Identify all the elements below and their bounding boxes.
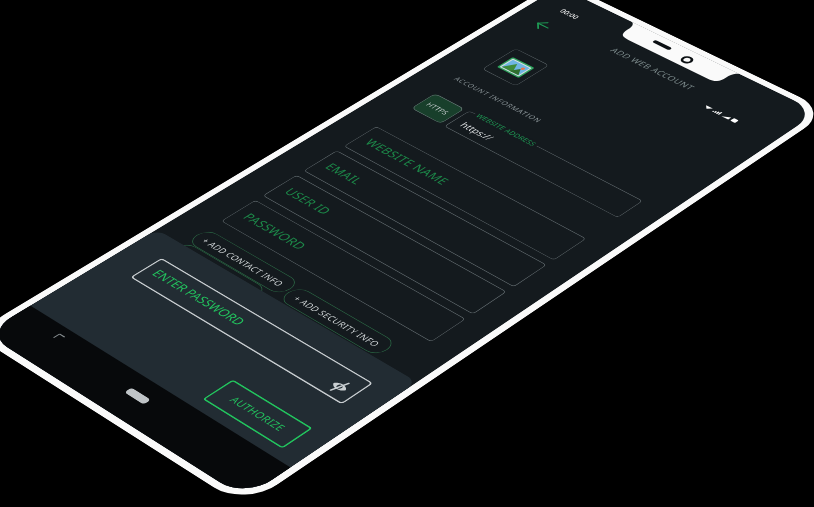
button[interactable]: HTTPS	[54, 257, 101, 295]
button[interactable]: USER ID	[50, 464, 368, 507]
staticText: HTTPS	[62, 269, 93, 283]
staticText: WEBSITE ADDRESS	[120, 250, 208, 263]
button[interactable]: EMAIL	[50, 404, 368, 454]
button[interactable]: https://	[107, 256, 368, 296]
button[interactable]: WEBSITE NAME	[50, 344, 368, 394]
staticText: WEBSITE NAME	[63, 358, 184, 380]
staticText: https://	[119, 270, 164, 288]
staticText: EMAIL	[63, 418, 113, 440]
staticText: ACCOUNT INFORMATION	[50, 214, 182, 227]
